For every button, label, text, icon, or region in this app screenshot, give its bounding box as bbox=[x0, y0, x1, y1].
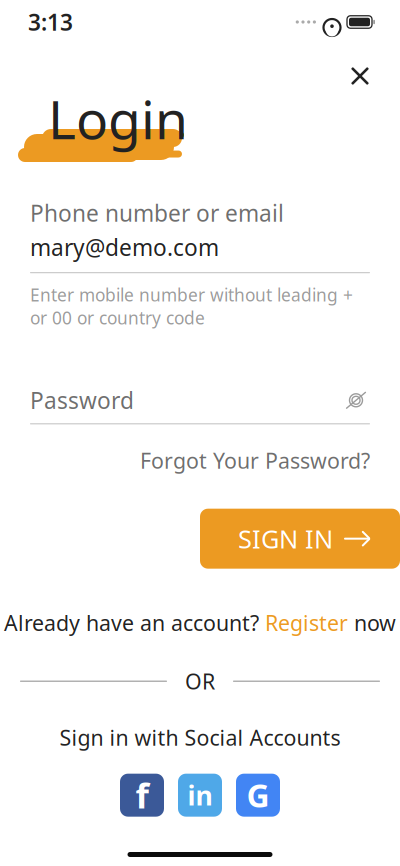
button[interactable]: Forgot Your Password? bbox=[140, 446, 370, 475]
staticText: Already have an account? bbox=[4, 609, 265, 637]
staticText: now bbox=[348, 609, 396, 637]
staticText: Forgot Your Password? bbox=[140, 446, 370, 475]
button[interactable]: Sign in with Facebook bbox=[120, 774, 164, 817]
staticText: G bbox=[246, 774, 269, 816]
staticText: Enter mobile number without leading + or… bbox=[30, 283, 353, 329]
staticText: Phone number or email bbox=[30, 198, 284, 228]
staticText: 3:13 bbox=[28, 7, 73, 37]
staticText: in bbox=[187, 777, 212, 813]
button[interactable]: Sign in with Google bbox=[236, 774, 280, 817]
staticText: mary@demo.com bbox=[30, 232, 219, 262]
button[interactable]: SIGN IN bbox=[200, 509, 400, 569]
staticText: OR bbox=[185, 667, 215, 695]
staticText: f bbox=[135, 772, 148, 818]
staticText: Login bbox=[48, 83, 188, 154]
staticText: SIGN IN bbox=[238, 522, 333, 555]
button[interactable]: Show password bbox=[332, 386, 370, 414]
button[interactable]: Sign in with LinkedIn bbox=[178, 774, 222, 817]
staticText: Register bbox=[265, 609, 348, 637]
button[interactable]: Register bbox=[265, 609, 348, 637]
staticText: Sign in with Social Accounts bbox=[59, 723, 340, 752]
staticText: Password bbox=[30, 385, 134, 415]
button[interactable]: Close bbox=[338, 54, 382, 98]
